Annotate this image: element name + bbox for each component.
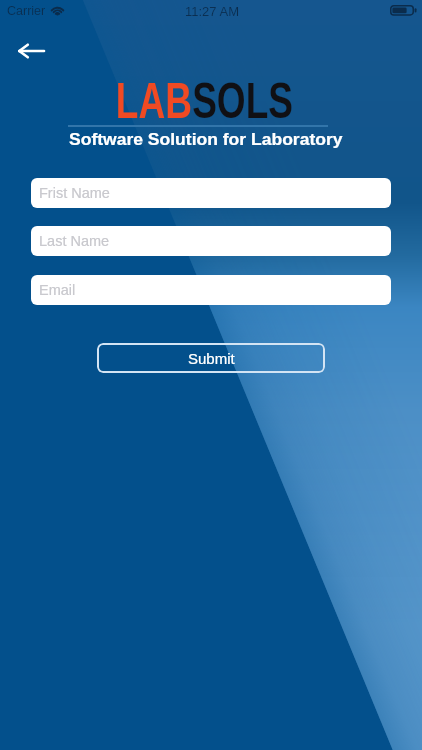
staticText: SOLS <box>192 73 293 128</box>
button[interactable]: Last Name <box>31 226 391 256</box>
staticText: 11:27 AM <box>185 4 239 19</box>
button[interactable]: Frist Name <box>31 178 391 208</box>
staticText: LAB <box>116 73 192 128</box>
staticText: Last Name <box>39 233 110 249</box>
button[interactable]: Back <box>11 31 51 71</box>
staticText: Frist Name <box>39 185 110 201</box>
staticText: Email <box>39 282 76 298</box>
staticText: Carrier <box>7 4 46 18</box>
staticText: Submit <box>188 350 235 367</box>
button[interactable]: Submit <box>97 343 325 373</box>
staticText: Software Solution for Laboratory <box>69 131 343 149</box>
button[interactable]: Email <box>31 275 391 305</box>
